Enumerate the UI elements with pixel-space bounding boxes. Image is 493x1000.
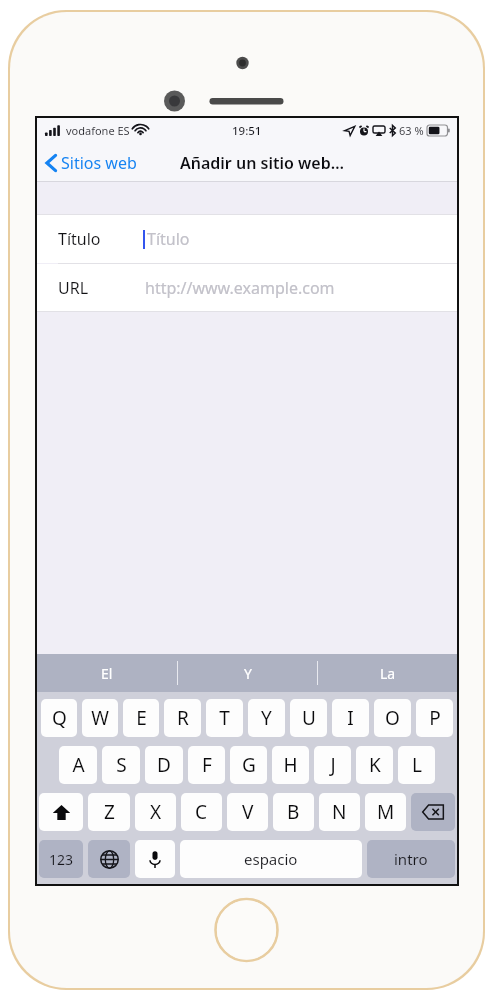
staticText: E [136, 705, 147, 731]
button[interactable]: El [37, 654, 177, 692]
staticText: 63 % [399, 123, 424, 138]
button[interactable]: URL [37, 264, 457, 311]
button[interactable]: P [416, 699, 453, 737]
button[interactable]: La [318, 654, 457, 692]
staticText: O [385, 705, 400, 731]
button[interactable]: G [230, 746, 267, 784]
button[interactable]: A [59, 746, 97, 784]
staticText: intro [394, 849, 428, 869]
staticText: Sitios web [61, 152, 137, 174]
button[interactable]: espacio [180, 840, 362, 878]
button[interactable]: T [206, 699, 243, 737]
staticText: Añadir un sitio web… [180, 152, 344, 174]
button[interactable]: S [102, 746, 140, 784]
staticText: J [330, 752, 336, 778]
staticText: F [202, 752, 212, 778]
staticText: H [283, 752, 298, 778]
button[interactable]: D [145, 746, 183, 784]
staticText: Q [52, 705, 67, 731]
button[interactable]: Q [41, 699, 77, 737]
staticText: D [157, 752, 171, 778]
button[interactable]: C [181, 793, 222, 831]
button[interactable]: W [82, 699, 118, 737]
staticText: Y [244, 664, 252, 683]
button[interactable]: U [290, 699, 327, 737]
button[interactable]: Sitios web [37, 148, 143, 178]
staticText: http://www.example.com [145, 277, 335, 299]
staticText: Título [58, 228, 101, 250]
staticText: R [177, 705, 189, 731]
staticText: Y [261, 705, 272, 731]
staticText: K [369, 752, 381, 778]
button[interactable]: intro [367, 840, 455, 878]
button[interactable]: E [123, 699, 159, 737]
button[interactable]: Cambiar teclado [88, 840, 130, 878]
staticText: espacio [244, 849, 298, 869]
staticText: G [242, 752, 256, 778]
staticText: L [412, 752, 422, 778]
staticText: URL [58, 277, 89, 299]
staticText: El [101, 664, 113, 683]
button[interactable]: Y [178, 654, 317, 692]
button[interactable]: Z [88, 793, 130, 831]
button[interactable]: B [273, 793, 314, 831]
button[interactable]: N [319, 793, 360, 831]
staticText: N [332, 799, 347, 825]
button[interactable]: Dictado [135, 840, 175, 878]
staticText: La [380, 664, 396, 683]
staticText: U [302, 705, 316, 731]
button[interactable]: F [188, 746, 225, 784]
button[interactable]: K [356, 746, 393, 784]
button[interactable]: Y [248, 699, 285, 737]
staticText: 123 [49, 850, 74, 869]
button[interactable]: J [314, 746, 351, 784]
staticText: B [287, 799, 300, 825]
staticText: vodafone ES [66, 123, 130, 138]
button[interactable]: Shift [39, 793, 83, 831]
staticText: S [116, 752, 127, 778]
button[interactable]: V [227, 793, 268, 831]
button[interactable]: R [164, 699, 201, 737]
staticText: Z [104, 799, 115, 825]
button[interactable]: X [135, 793, 176, 831]
button[interactable]: M [365, 793, 406, 831]
button[interactable]: O [374, 699, 411, 737]
button[interactable]: H [272, 746, 309, 784]
staticText: T [219, 705, 230, 731]
button[interactable]: I [332, 699, 369, 737]
staticText: X [150, 799, 162, 825]
staticText: W [91, 705, 109, 731]
button[interactable]: Título [37, 215, 457, 263]
button[interactable]: 123 [39, 840, 83, 878]
staticText: C [195, 799, 208, 825]
staticText: V [242, 799, 254, 825]
staticText: Título [147, 228, 190, 250]
staticText: A [72, 752, 85, 778]
staticText: I [347, 705, 354, 731]
staticText: 19:51 [232, 123, 262, 139]
staticText: P [429, 705, 441, 731]
button[interactable]: Borrar [411, 793, 455, 831]
staticText: M [377, 799, 395, 825]
button[interactable]: L [398, 746, 435, 784]
